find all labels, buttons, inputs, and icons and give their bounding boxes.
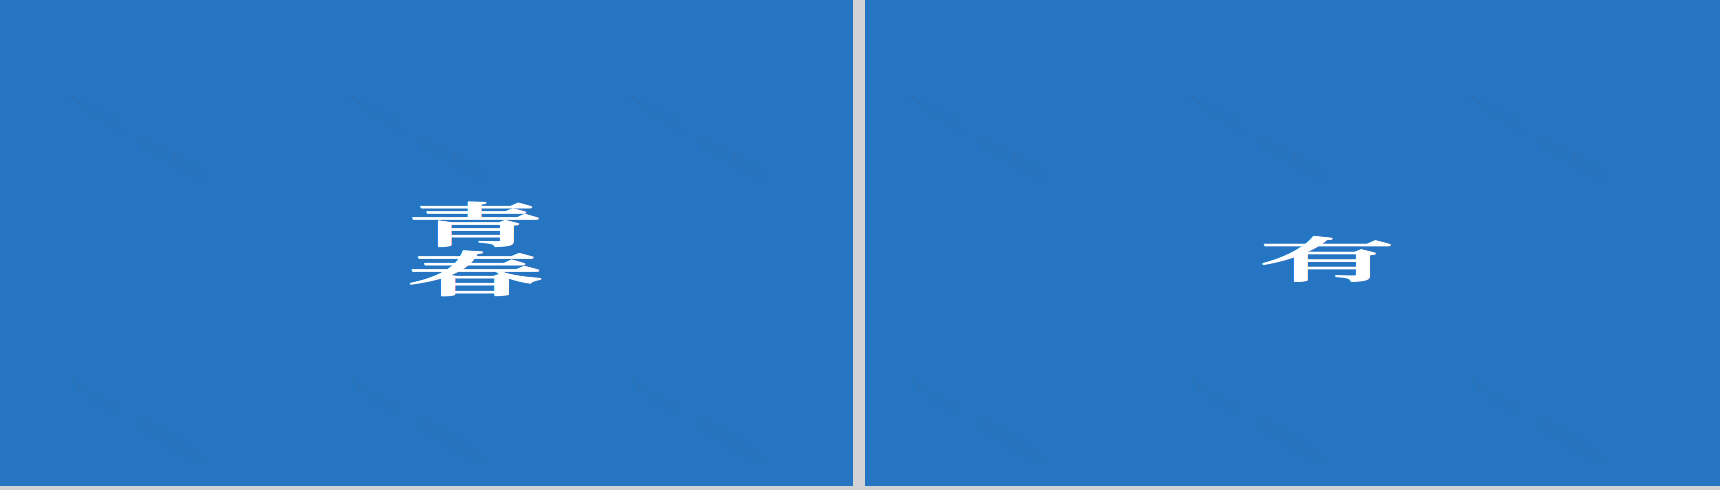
staticText: 春: [405, 171, 544, 370]
staticText: 青: [405, 122, 544, 321]
button[interactable]: 青春: [0, 0, 853, 486]
staticText: 春: [405, 170, 544, 369]
staticText: 青: [405, 122, 544, 322]
staticText: 春: [405, 171, 544, 370]
button[interactable]: 有: [865, 0, 1720, 486]
staticText: 青: [405, 122, 544, 321]
staticText: 春: [405, 171, 544, 371]
staticText: 春: [405, 171, 544, 370]
staticText: 有: [1257, 157, 1396, 356]
staticText: 有: [1257, 156, 1396, 356]
staticText: 有: [1257, 156, 1396, 355]
staticText: 有: [1257, 157, 1396, 356]
staticText: 青: [405, 121, 544, 320]
staticText: 青: [405, 122, 544, 321]
staticText: 有: [1257, 156, 1396, 355]
